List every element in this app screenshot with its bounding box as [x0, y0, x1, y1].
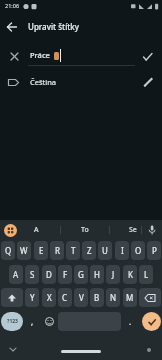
button[interactable] — [3, 223, 18, 238]
button[interactable]: L — [139, 265, 153, 284]
staticText: To — [81, 225, 89, 235]
staticText: Upravit štítky — [28, 21, 80, 32]
staticText: K — [128, 269, 133, 280]
button[interactable]: O — [131, 241, 145, 260]
button[interactable]: M — [123, 288, 137, 307]
staticText: X — [47, 292, 52, 303]
staticText: G — [78, 269, 84, 280]
staticText: 21:06 — [5, 2, 20, 9]
staticText: E — [39, 245, 44, 256]
staticText: C — [62, 292, 68, 303]
button[interactable] — [42, 312, 56, 331]
staticText: W — [20, 245, 28, 256]
button[interactable]: H — [90, 265, 104, 284]
button[interactable]: X — [42, 288, 56, 307]
staticText: , — [31, 316, 34, 327]
staticText: Se — [129, 225, 137, 235]
staticText: . — [129, 316, 132, 327]
button[interactable]: . — [123, 312, 137, 331]
staticText: B — [94, 292, 100, 303]
staticText: L — [144, 269, 149, 280]
button[interactable]: P — [147, 241, 161, 260]
button[interactable]: K — [123, 265, 137, 284]
button[interactable]: To — [65, 220, 105, 240]
staticText: Čeština — [30, 77, 57, 87]
staticText: A — [34, 225, 39, 235]
button[interactable]: , — [25, 312, 39, 331]
staticText: U — [102, 245, 108, 256]
button[interactable]: Q — [1, 241, 15, 260]
button[interactable]: Y — [25, 288, 39, 307]
button[interactable]: E — [34, 241, 48, 260]
staticText: A — [13, 269, 19, 280]
staticText: Y — [30, 292, 35, 303]
button[interactable] — [142, 312, 161, 331]
staticText: D — [46, 269, 52, 280]
button[interactable]: T — [66, 241, 80, 260]
button[interactable]: Čeština — [0, 71, 162, 94]
staticText: M — [126, 292, 134, 303]
button[interactable] — [1, 288, 23, 307]
staticText: O — [135, 245, 142, 256]
staticText: ?123 — [7, 318, 18, 325]
button[interactable]: Se — [113, 220, 153, 240]
button[interactable]: N — [106, 288, 120, 307]
staticText: T — [71, 245, 76, 256]
staticText: Q — [5, 245, 12, 256]
button[interactable]: U — [98, 241, 112, 260]
button[interactable]: J — [106, 265, 120, 284]
button[interactable]: V — [74, 288, 88, 307]
button[interactable]: Práce — [0, 46, 162, 68]
button[interactable]: Z — [82, 241, 96, 260]
staticText: F — [63, 269, 68, 280]
staticText: N — [110, 292, 117, 303]
button[interactable]: W — [17, 241, 31, 260]
staticText: P — [152, 245, 157, 256]
button[interactable]: C — [58, 288, 72, 307]
button[interactable]: F — [58, 265, 72, 284]
button[interactable]: A — [9, 265, 23, 284]
button[interactable] — [139, 288, 161, 307]
staticText: H — [94, 269, 100, 280]
staticText: R — [55, 245, 60, 256]
button[interactable]: B — [90, 288, 104, 307]
button[interactable]: S — [25, 265, 39, 284]
button[interactable]: R — [50, 241, 64, 260]
button[interactable]: I — [115, 241, 129, 260]
staticText: V — [79, 292, 84, 303]
button[interactable]: ?123 — [1, 312, 23, 331]
button[interactable] — [4, 19, 20, 35]
button[interactable]: G — [74, 265, 88, 284]
staticText: J — [112, 269, 115, 280]
staticText: Z — [87, 245, 92, 256]
staticText: I — [121, 245, 124, 256]
staticText: S — [30, 269, 35, 280]
button[interactable]: D — [42, 265, 56, 284]
button[interactable]: A — [16, 220, 56, 240]
staticText: Práce — [30, 50, 50, 60]
